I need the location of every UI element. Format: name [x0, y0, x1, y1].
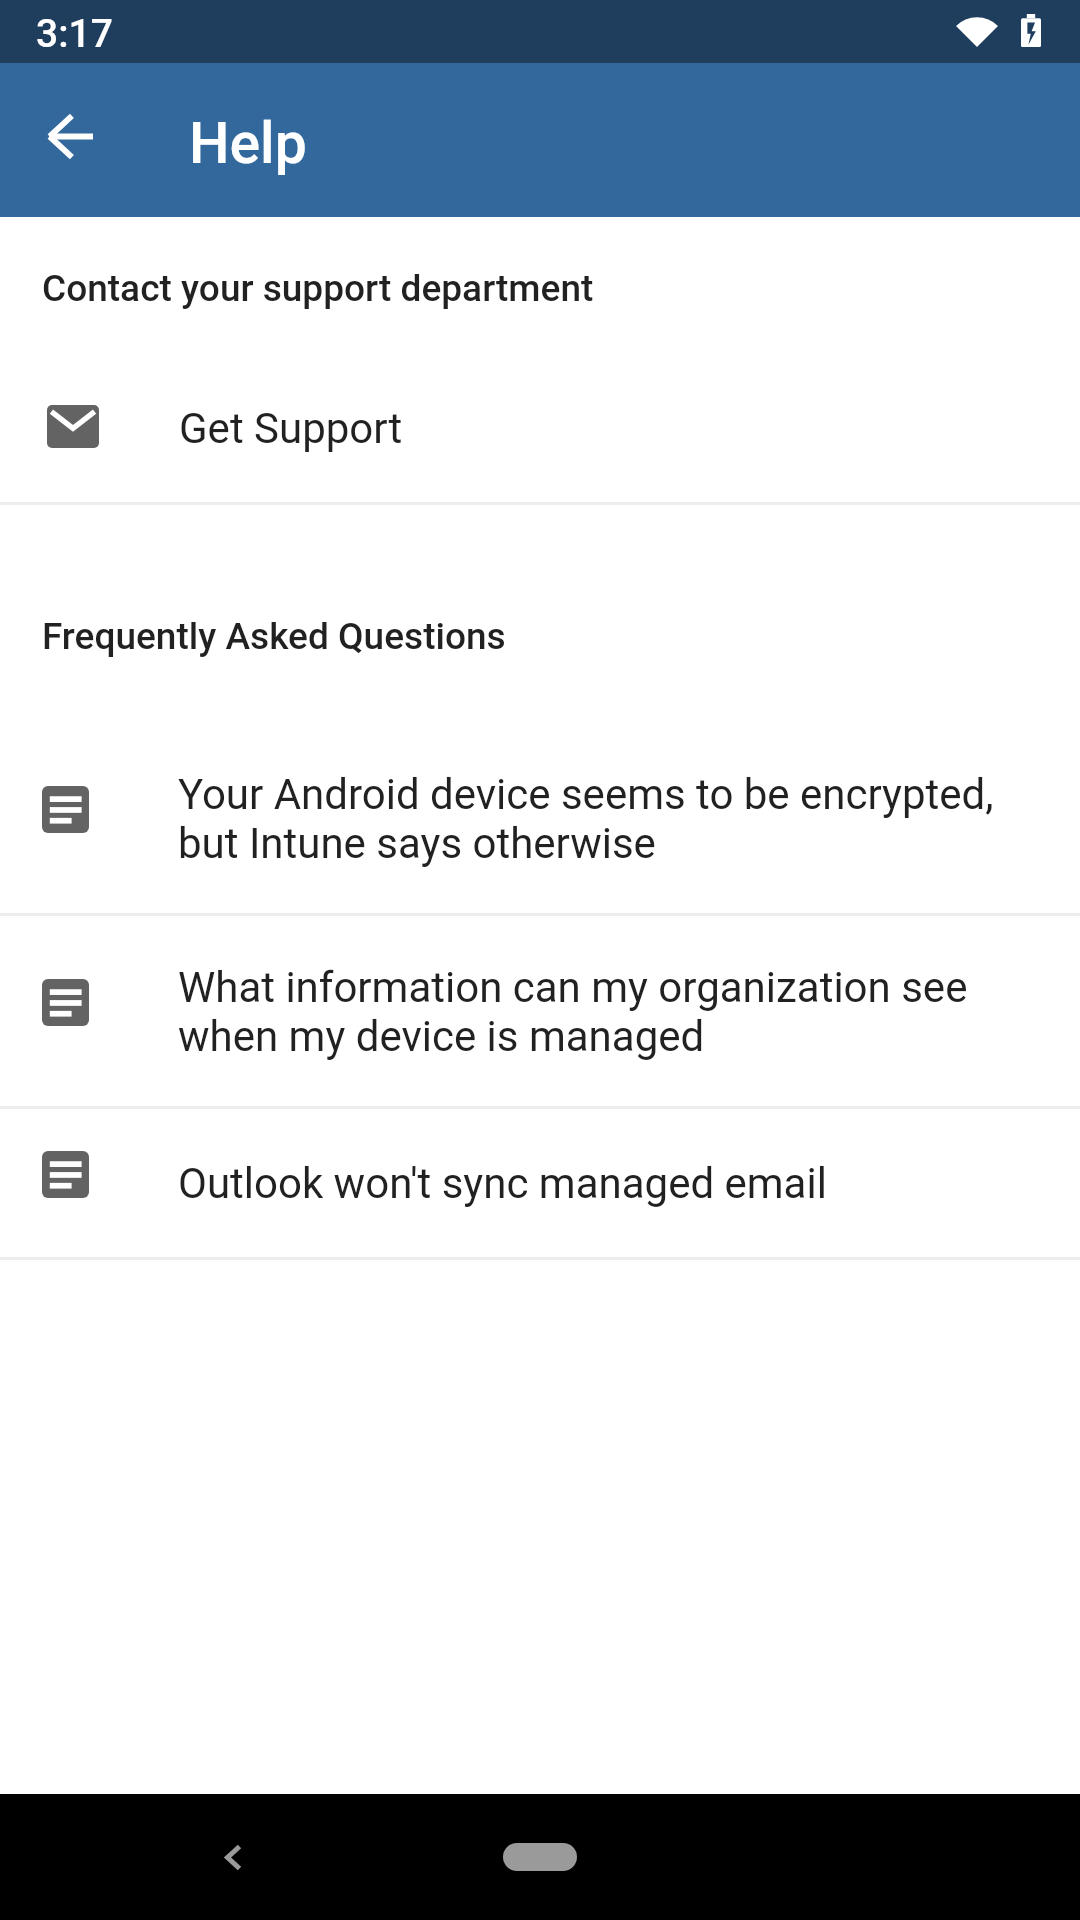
staticText: Outlook won't sync managed email [178, 1159, 827, 1208]
staticText: Help [189, 110, 307, 177]
button[interactable]: Outlook won't sync managed email [0, 1106, 1080, 1257]
staticText: Contact your support department [42, 267, 594, 310]
button[interactable]: Get Support [0, 375, 1080, 502]
button[interactable]: What information can my organization see… [0, 913, 1080, 1106]
staticText: Your Android device seems to be encrypte… [178, 770, 1052, 868]
staticText: 3:17 [36, 11, 113, 57]
button[interactable]: Back [193, 1817, 273, 1897]
button[interactable]: Home [503, 1843, 577, 1871]
staticText: Get Support [179, 404, 403, 453]
staticText: What information can my organization see… [178, 963, 1052, 1061]
staticText: Frequently Asked Questions [42, 615, 506, 658]
button[interactable]: Navigate up [14, 80, 126, 192]
button[interactable]: Your Android device seems to be encrypte… [0, 720, 1080, 913]
